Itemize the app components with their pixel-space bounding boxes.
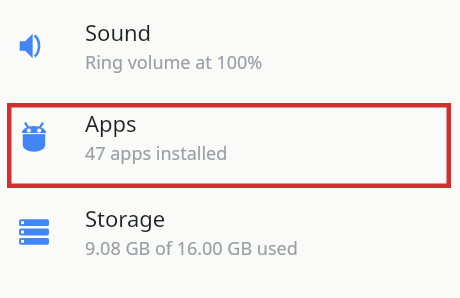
staticText: Ring volume at 100%	[85, 50, 263, 75]
staticText: Apps	[85, 108, 137, 138]
button[interactable]: Storage	[0, 192, 460, 272]
other: Sound	[0, 6, 68, 86]
staticText: Sound	[85, 17, 152, 47]
staticText: 47 apps installed	[85, 141, 228, 166]
staticText: 9.08 GB of 16.00 GB used	[85, 236, 298, 261]
staticText: Storage	[85, 203, 166, 233]
button[interactable]: Apps	[0, 97, 460, 177]
other: Apps	[0, 97, 68, 177]
button[interactable]: Sound	[0, 6, 460, 86]
other: Storage	[0, 192, 68, 272]
